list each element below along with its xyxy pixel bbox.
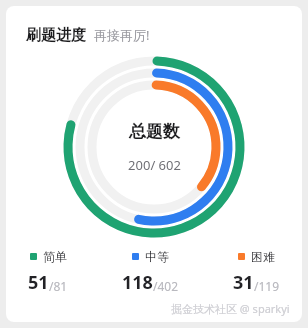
staticText: 掘金技术社区 @ sparkyi: [171, 301, 290, 316]
staticText: 刷题进度: [26, 26, 86, 45]
staticText: /402: [153, 278, 179, 294]
staticText: 51: [28, 270, 49, 295]
staticText: 中等: [145, 249, 169, 264]
button[interactable]: 刷题进度: [26, 26, 150, 45]
staticText: 简单: [43, 249, 67, 264]
staticText: 118: [122, 270, 153, 295]
staticText: 困难: [251, 249, 275, 264]
staticText: 31: [233, 270, 254, 295]
staticText: 200/ 602: [128, 156, 181, 174]
other: Progress rings: [61, 54, 247, 240]
staticText: 总题数: [129, 121, 180, 142]
button[interactable]: 简单: [28, 249, 68, 295]
staticText: 再接再厉!: [94, 26, 150, 44]
button[interactable]: 中等: [122, 249, 179, 295]
staticText: /81: [49, 278, 68, 294]
staticText: /119: [254, 278, 280, 294]
button[interactable]: 困难: [233, 249, 280, 295]
